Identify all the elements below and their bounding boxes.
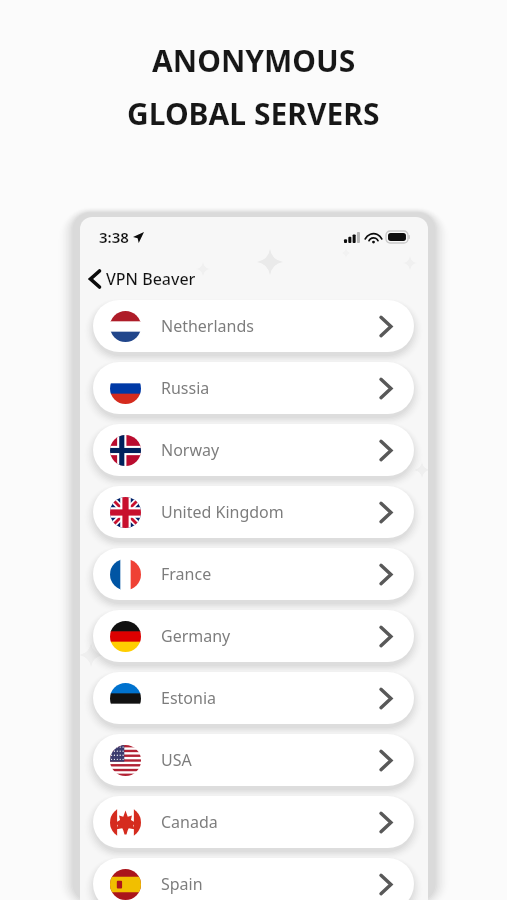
staticText: USA [161,749,192,771]
button[interactable]: Canada [93,796,414,848]
staticText: Russia [161,377,210,399]
staticText: ANONYMOUS [152,40,356,81]
button[interactable]: USA [93,734,414,786]
button[interactable]: Russia [93,362,414,414]
button[interactable]: Estonia [93,672,414,724]
button[interactable]: Spain [93,858,414,900]
button[interactable]: France [93,548,414,600]
staticText: Canada [161,811,218,833]
staticText: United Kingdom [161,501,284,523]
staticText: 3:38 [99,227,129,247]
staticText: France [161,563,212,585]
staticText: Norway [161,439,220,461]
button[interactable]: VPN Beaver [86,264,198,294]
staticText: Germany [161,625,231,647]
button[interactable]: Germany [93,610,414,662]
staticText: Netherlands [161,315,254,337]
staticText: GLOBAL SERVERS [127,93,380,134]
staticText: VPN Beaver [106,268,196,290]
button[interactable]: United Kingdom [93,486,414,538]
staticText: Spain [161,873,203,895]
button[interactable]: Norway [93,424,414,476]
staticText: Estonia [161,687,217,709]
button[interactable]: Netherlands [93,300,414,352]
